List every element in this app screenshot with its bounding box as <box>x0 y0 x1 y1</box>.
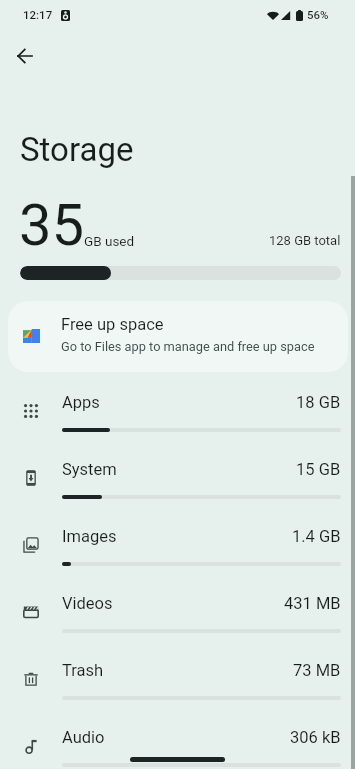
staticText: GB used <box>84 233 135 249</box>
button[interactable]: Videos <box>0 591 355 649</box>
staticText: 73 MB <box>293 661 341 680</box>
button[interactable]: Back <box>4 36 44 76</box>
staticText: Audio <box>62 728 105 747</box>
staticText: 18 GB <box>296 393 341 412</box>
staticText: 1.4 GB <box>292 527 341 546</box>
staticText: Free up space <box>61 315 164 334</box>
staticText: 15 GB <box>296 460 341 479</box>
staticText: 35 <box>19 191 85 259</box>
staticText: System <box>62 460 117 479</box>
button[interactable]: Apps <box>0 390 355 448</box>
staticText: Storage <box>20 130 134 169</box>
staticText: 56% <box>307 8 329 21</box>
staticText: Apps <box>62 393 100 412</box>
staticText: Go to Files app to manage and free up sp… <box>61 339 315 354</box>
staticText: 306 kB <box>290 728 341 747</box>
staticText: Videos <box>62 594 113 613</box>
button[interactable]: System <box>0 457 355 515</box>
button[interactable]: Images <box>0 524 355 582</box>
staticText: 128 GB total <box>269 233 341 248</box>
staticText: Images <box>62 527 117 546</box>
button[interactable]: Free up space <box>8 301 348 372</box>
staticText: 431 MB <box>284 594 341 613</box>
staticText: Trash <box>62 661 104 680</box>
staticText: 12:17 <box>23 8 53 21</box>
button[interactable]: Audio <box>0 725 355 769</box>
button[interactable]: Trash <box>0 658 355 716</box>
